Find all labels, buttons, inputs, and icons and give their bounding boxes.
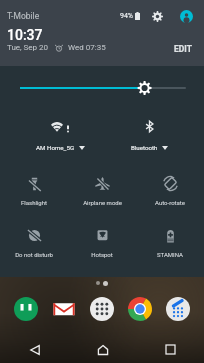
button[interactable]: Brightness xyxy=(0,66,204,110)
staticText: 10:37 xyxy=(7,27,43,43)
staticText: Flashlight xyxy=(21,199,47,206)
button[interactable]: Gmail xyxy=(49,294,79,324)
staticText: T-Mobile xyxy=(7,11,40,21)
button[interactable]: Flashlight xyxy=(0,170,68,222)
button[interactable]: Recents xyxy=(157,336,184,363)
button[interactable]: Back xyxy=(21,336,48,363)
staticText: Auto-rotate xyxy=(155,199,185,206)
button[interactable]: Settings xyxy=(150,9,164,23)
button[interactable]: Airplane mode xyxy=(68,170,136,222)
button[interactable]: Hotspot xyxy=(68,222,136,274)
button[interactable]: Phone xyxy=(163,294,193,324)
button[interactable]: Bluetooth xyxy=(102,110,204,170)
staticText: Tue, Sep 20 xyxy=(7,43,49,52)
button[interactable]: STAMINA xyxy=(136,222,204,274)
staticText: Hotspot xyxy=(91,251,113,258)
button[interactable]: EDIT xyxy=(166,39,204,58)
staticText: Airplane mode xyxy=(83,199,122,206)
staticText: Wed 07:35 xyxy=(68,43,106,52)
button[interactable]: User profile xyxy=(179,9,193,23)
button[interactable]: Hangouts xyxy=(11,294,41,324)
button[interactable]: AM Home_5G xyxy=(0,110,102,170)
staticText: Bluetooth xyxy=(131,144,158,151)
staticText: Do not disturb xyxy=(15,251,53,258)
button[interactable]: Auto-rotate xyxy=(136,170,204,222)
button[interactable]: Do not disturb xyxy=(0,222,68,274)
button[interactable]: All apps xyxy=(87,294,117,324)
staticText: AM Home_5G xyxy=(36,144,75,151)
button[interactable]: Home xyxy=(89,336,116,363)
staticText: 94% xyxy=(120,12,133,20)
staticText: EDIT xyxy=(174,44,192,54)
button[interactable]: Chrome xyxy=(125,294,155,324)
staticText: STAMINA xyxy=(157,251,183,258)
